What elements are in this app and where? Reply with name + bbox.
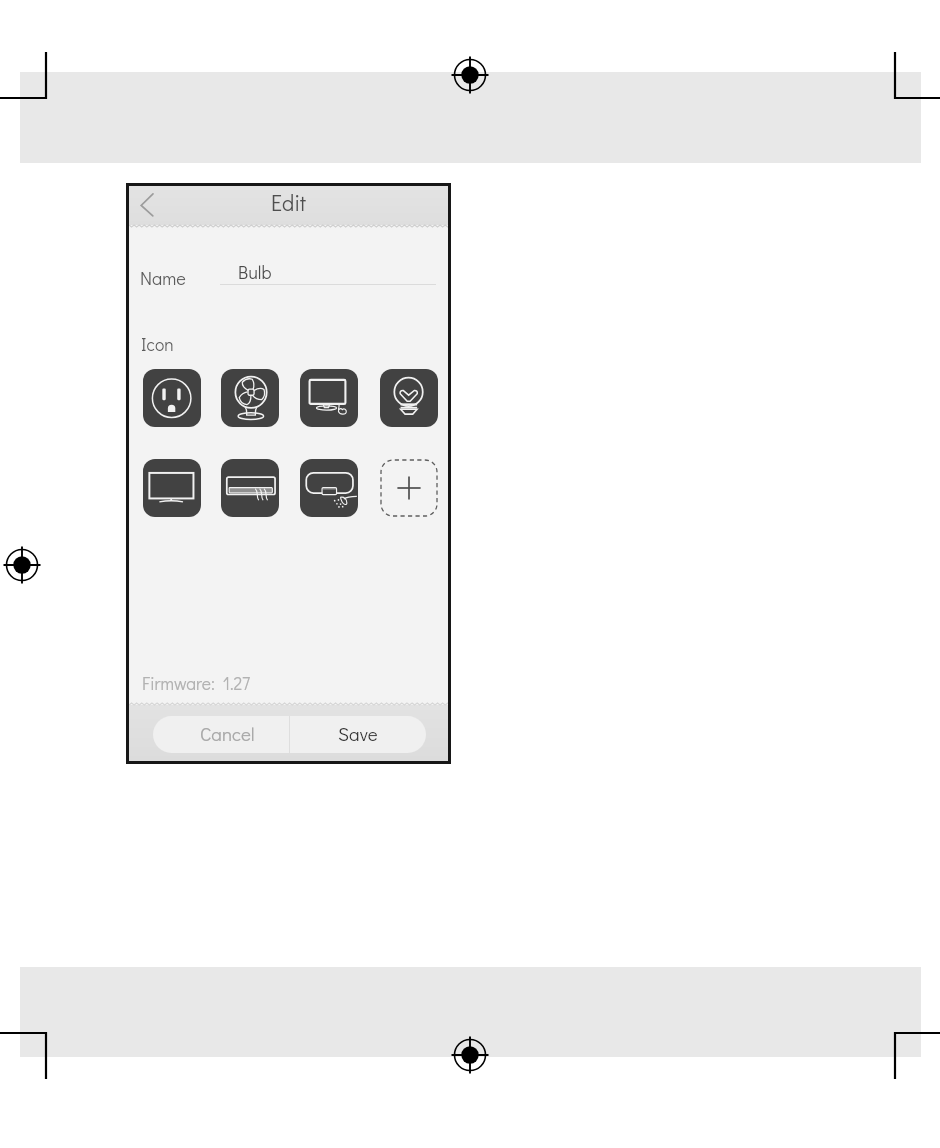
staticText: Cancel — [200, 721, 255, 746]
staticText: Name — [140, 266, 186, 290]
button[interactable]: Computer — [300, 369, 358, 427]
staticText: Firmware: 1.27 — [142, 672, 251, 695]
staticText: Edit — [129, 188, 448, 217]
button[interactable]: Fan — [221, 369, 279, 427]
button[interactable]: TV — [143, 459, 201, 517]
staticText: Bulb — [238, 260, 272, 283]
button[interactable]: Back — [133, 189, 167, 223]
button[interactable]: Save — [290, 716, 426, 753]
button[interactable]: Water heater — [300, 459, 358, 517]
staticText: Icon — [141, 333, 174, 356]
button[interactable]: Socket — [143, 369, 201, 427]
button[interactable]: Cancel — [153, 716, 289, 753]
button[interactable]: Air conditioner — [221, 459, 279, 517]
button[interactable]: Add icon — [380, 459, 438, 517]
button[interactable]: Light bulb — [380, 369, 438, 427]
staticText: Save — [338, 721, 378, 746]
